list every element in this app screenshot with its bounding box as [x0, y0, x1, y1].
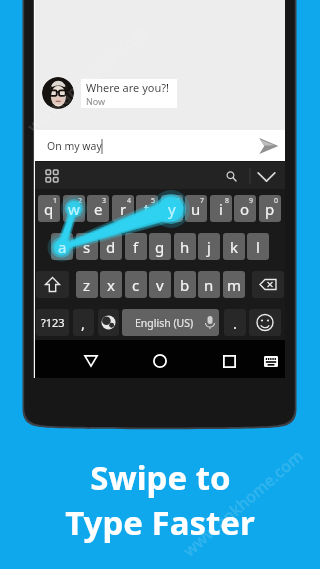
button[interactable]: d	[100, 233, 122, 260]
staticText: English (US)	[135, 316, 194, 330]
button[interactable]: English (US)	[122, 309, 219, 336]
button[interactable]: b	[174, 271, 196, 298]
button[interactable]: e	[87, 195, 109, 222]
button[interactable]: Recents	[223, 355, 236, 368]
staticText: a	[58, 237, 67, 257]
staticText: On my way	[47, 139, 102, 153]
staticText: Now	[86, 95, 106, 107]
button[interactable]: Switch keyboard	[264, 356, 278, 367]
staticText: o	[240, 199, 250, 219]
staticText: y	[168, 199, 176, 219]
button[interactable]: x	[100, 271, 122, 298]
button[interactable]: v	[149, 271, 171, 298]
staticText: y	[168, 199, 176, 219]
button[interactable]: Shift	[36, 271, 69, 298]
button[interactable]: .	[224, 309, 246, 336]
button[interactable]: Hide keyboard	[257, 171, 276, 183]
button[interactable]: h	[174, 233, 196, 260]
button[interactable]: Back	[84, 355, 98, 367]
staticText: .	[233, 313, 238, 333]
button[interactable]: Emoji	[249, 309, 281, 336]
staticText: d	[106, 237, 116, 257]
staticText: 4	[127, 196, 132, 206]
button[interactable]: Where are you?!	[81, 79, 177, 108]
staticText: u	[191, 199, 201, 219]
button[interactable]: ,	[73, 309, 94, 336]
button[interactable]: i	[210, 195, 232, 222]
button[interactable]: a	[51, 233, 73, 260]
staticText: h	[180, 237, 190, 257]
button[interactable]: Send	[258, 137, 279, 155]
button[interactable]: m	[223, 271, 245, 298]
staticText: b	[180, 275, 190, 295]
button[interactable]: l	[247, 233, 269, 260]
button[interactable]: s	[76, 233, 98, 260]
staticText: Where are you?!	[86, 80, 169, 95]
staticText: l	[256, 237, 260, 257]
staticText: Swipe to	[90, 455, 231, 500]
staticText: f	[133, 237, 139, 257]
button[interactable]: k	[223, 233, 245, 260]
staticText: 5	[151, 196, 156, 206]
staticText: w	[68, 199, 80, 219]
button[interactable]: t	[136, 195, 158, 222]
staticText: p	[265, 199, 275, 219]
staticText: 7	[200, 196, 205, 206]
button[interactable]: r	[112, 195, 134, 222]
staticText: Type Faster	[65, 500, 255, 545]
staticText: ?123	[41, 315, 65, 330]
staticText: k	[230, 237, 239, 257]
button[interactable]: Home	[153, 354, 167, 368]
staticText: z	[83, 275, 91, 295]
staticText: www.apkhome.com	[178, 445, 307, 561]
staticText: 8	[225, 196, 230, 206]
staticText: e	[94, 199, 103, 219]
button[interactable]: q	[38, 195, 60, 222]
button[interactable]: f	[125, 233, 147, 260]
button[interactable]: Change language	[98, 309, 119, 336]
staticText: j	[207, 237, 211, 257]
staticText: www.apkhome.com	[22, 21, 151, 137]
button[interactable]: z	[76, 271, 98, 298]
staticText: s	[83, 237, 91, 257]
button[interactable]: ?123	[36, 309, 69, 336]
button[interactable]: Backspace	[252, 271, 284, 298]
staticText: 9	[249, 196, 254, 206]
button[interactable]: Apps	[46, 170, 58, 182]
button[interactable]: u	[185, 195, 207, 222]
button[interactable]: c	[125, 271, 147, 298]
button[interactable]: w	[63, 195, 85, 222]
button[interactable]: n	[198, 271, 220, 298]
staticText: r	[120, 199, 127, 219]
staticText: ,	[81, 313, 86, 333]
staticText: 0	[274, 196, 279, 206]
staticText: m	[227, 275, 242, 295]
staticText: x	[107, 275, 115, 295]
staticText: n	[204, 275, 214, 295]
staticText: 3	[102, 196, 107, 206]
staticText: 2	[78, 196, 83, 206]
staticText: v	[156, 275, 164, 295]
button[interactable]: g	[149, 233, 171, 260]
staticText: w	[68, 199, 80, 219]
staticText: i	[219, 199, 223, 219]
staticText: q	[44, 199, 54, 219]
staticText: a	[58, 237, 67, 257]
staticText: 6	[176, 196, 181, 206]
staticText: t	[144, 199, 150, 219]
button[interactable]: o	[234, 195, 256, 222]
button[interactable]: y	[161, 195, 183, 222]
button[interactable]: j	[198, 233, 220, 260]
staticText: 1	[53, 196, 58, 206]
button[interactable]: Contact avatar	[42, 77, 74, 109]
staticText: g	[155, 237, 165, 257]
staticText: c	[132, 275, 140, 295]
button[interactable]: p	[259, 195, 281, 222]
button[interactable]: Search	[225, 170, 238, 183]
